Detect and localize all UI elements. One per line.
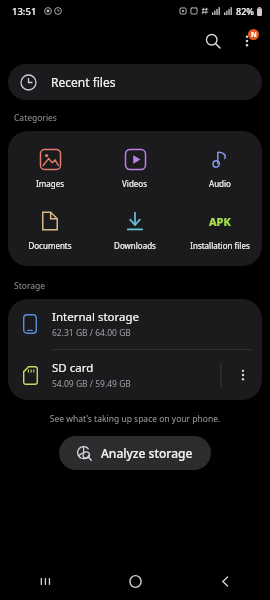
button[interactable]: Home [90, 562, 180, 600]
button[interactable]: More options [230, 24, 264, 58]
staticText: 13:51 [12, 5, 37, 18]
button[interactable]: Analyze storage [59, 436, 211, 470]
staticText: 82% [236, 5, 254, 17]
staticText: Audio [209, 178, 231, 189]
button[interactable]: Recent files [8, 64, 262, 100]
staticText: N [251, 30, 257, 40]
button[interactable]: Documents [8, 206, 92, 253]
staticText: SD card [52, 360, 94, 376]
staticText: Installation files [190, 240, 250, 251]
staticText: 62.31 GB / 64.00 GB [52, 327, 131, 339]
staticText: APK [209, 214, 231, 229]
button[interactable]: Downloads [92, 206, 177, 253]
staticText: Images [36, 178, 64, 189]
staticText: Recent files [51, 74, 116, 90]
staticText: Internal storage [52, 309, 140, 325]
button[interactable]: Search [196, 24, 230, 58]
staticText: Videos [122, 178, 147, 189]
staticText: Documents [28, 240, 72, 251]
staticText: Downloads [114, 240, 156, 251]
staticText: 54.09 GB / 59.49 GB [52, 378, 131, 390]
button[interactable]: SD card options [228, 360, 258, 390]
button[interactable]: APK [177, 206, 262, 253]
button[interactable]: Back [180, 562, 270, 600]
staticText: Storage [14, 280, 46, 292]
button[interactable]: SD card [8, 350, 262, 400]
button[interactable]: Images [8, 144, 92, 191]
button[interactable]: Recent apps [0, 562, 90, 600]
staticText: See what's taking up space on your phone… [0, 413, 270, 425]
button[interactable]: Audio [177, 144, 262, 191]
staticText: Categories [14, 112, 57, 124]
button[interactable]: Internal storage [8, 299, 262, 349]
button[interactable]: Videos [92, 144, 177, 191]
staticText: Analyze storage [101, 445, 193, 461]
